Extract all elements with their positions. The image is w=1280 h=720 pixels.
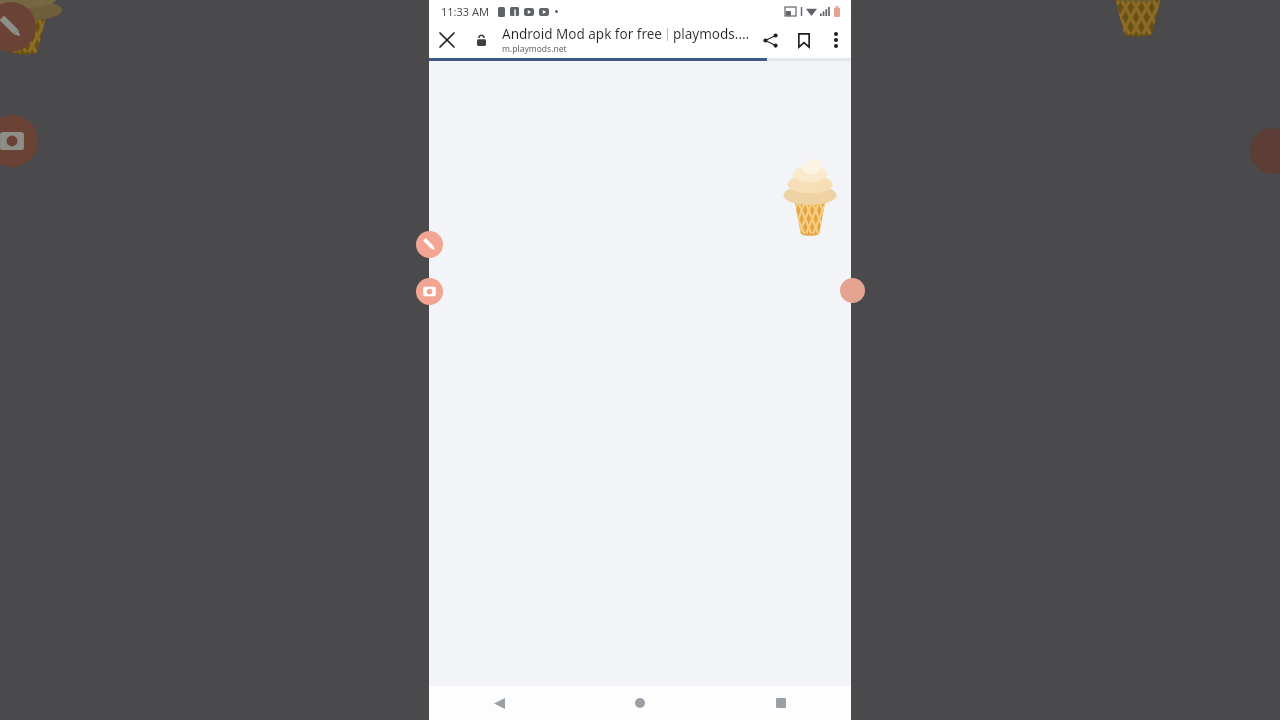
button[interactable]: Share: [753, 23, 787, 57]
button[interactable]: Recent apps: [710, 686, 851, 720]
button[interactable]: Bookmark: [787, 23, 821, 57]
button[interactable]: Close: [429, 22, 465, 58]
button[interactable]: Action: [840, 278, 865, 303]
button[interactable]: Connection is secure: [467, 26, 495, 54]
button[interactable]: More options: [821, 25, 851, 55]
staticText: playmods.net: [673, 25, 751, 43]
button[interactable]: Camera: [416, 278, 443, 305]
button[interactable]: Back: [429, 686, 569, 720]
staticText: Android Mod apk for free: [502, 25, 662, 43]
button[interactable]: Edit: [416, 231, 443, 258]
staticText: 11:33 AM: [441, 4, 489, 19]
button[interactable]: Home: [569, 686, 710, 720]
staticText: m.playmods.net: [502, 43, 567, 55]
